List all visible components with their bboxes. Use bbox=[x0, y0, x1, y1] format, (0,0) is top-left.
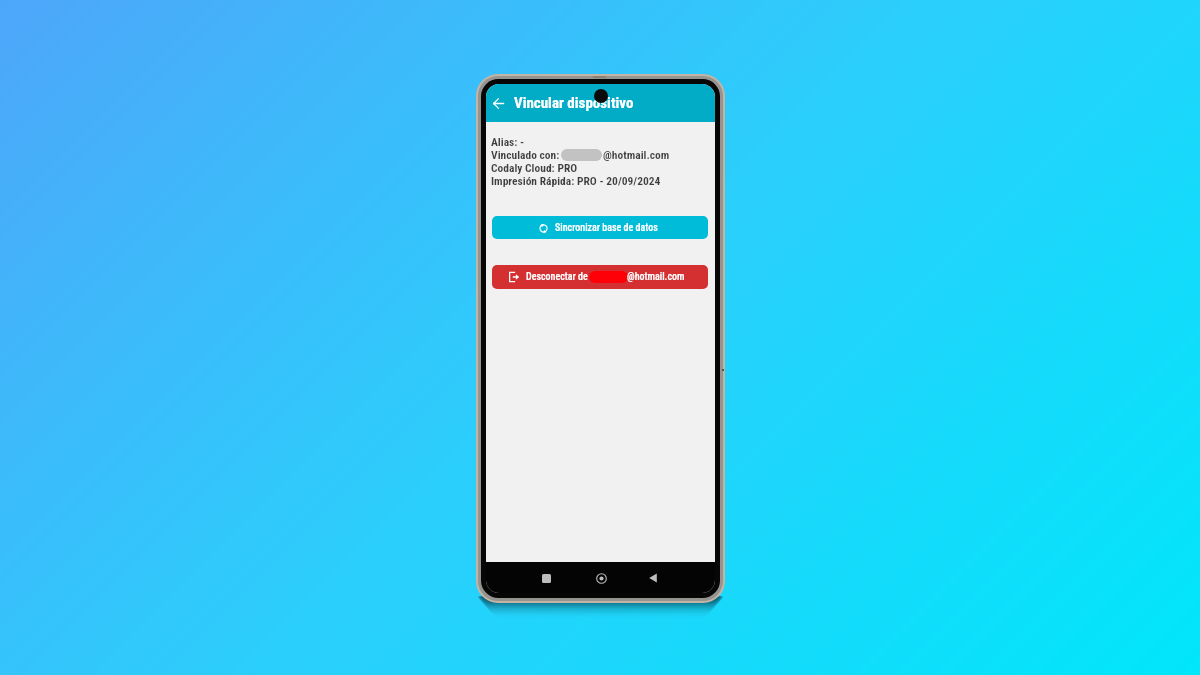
staticText: @hotmail.com bbox=[627, 271, 685, 283]
button[interactable]: Back bbox=[639, 564, 667, 592]
staticText: Vinculado con: bbox=[491, 148, 562, 161]
staticText: Sincronizar base de datos bbox=[555, 222, 658, 234]
staticText: Vincular dispositivo bbox=[514, 94, 634, 112]
staticText: @hotmail.com bbox=[603, 148, 670, 161]
staticText: Desconectar de bbox=[526, 271, 591, 283]
button[interactable]: Sincronizar base de datos bbox=[492, 216, 708, 239]
staticText: Impresión Rápida: PRO - 20/09/2024 bbox=[491, 174, 661, 187]
staticText: Codaly Cloud: PRO bbox=[491, 161, 578, 174]
button[interactable]: Recent apps bbox=[532, 564, 560, 592]
button[interactable]: Back bbox=[487, 92, 509, 114]
staticText: Alias: - bbox=[491, 135, 525, 148]
button[interactable]: Desconectar de bbox=[492, 265, 708, 289]
button[interactable]: Home bbox=[587, 564, 615, 592]
